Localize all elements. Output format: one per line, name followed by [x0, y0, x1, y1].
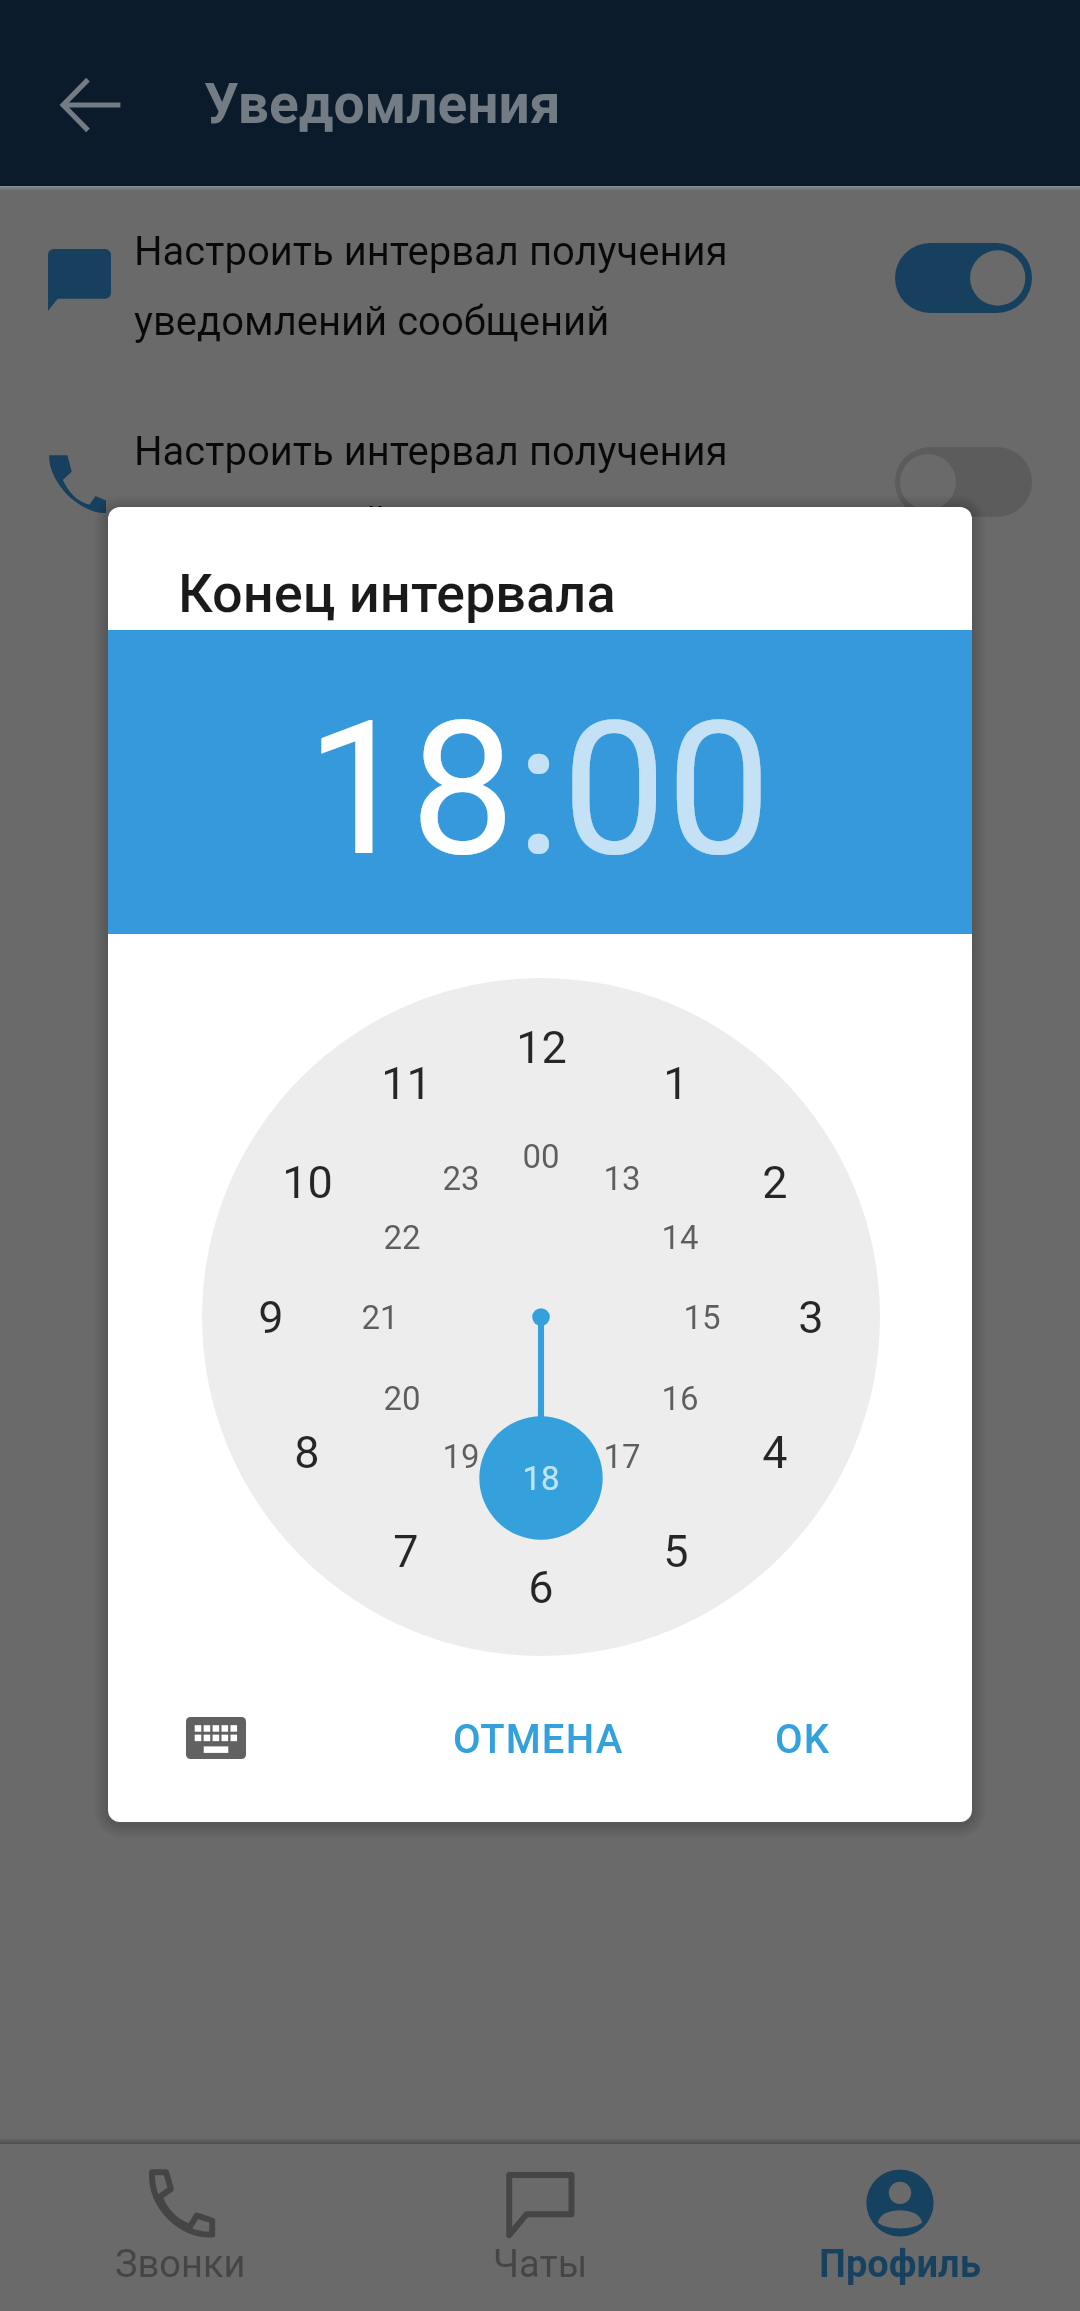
button[interactable]: OK [755, 1702, 851, 1777]
staticText: 6 [528, 1561, 554, 1614]
staticText: 4 [762, 1426, 788, 1479]
staticText: ОТМЕНА [453, 1716, 624, 1763]
staticText: 18 [522, 1459, 560, 1498]
staticText: Звонки [115, 2242, 246, 2287]
staticText: Конец интервала [178, 562, 616, 625]
staticText: 7 [393, 1525, 419, 1578]
staticText: 1 [663, 1057, 689, 1110]
staticText: Профиль [819, 2242, 981, 2287]
staticText: 12 [516, 1021, 567, 1074]
staticText: 23 [442, 1159, 480, 1198]
staticText: 14 [661, 1218, 699, 1257]
staticText: 19 [442, 1437, 480, 1476]
staticText: 00 [522, 1137, 560, 1176]
button[interactable]: Настроить интервал получения уведомлений… [0, 191, 1080, 391]
staticText: 10 [282, 1156, 333, 1209]
button[interactable]: Переключатель выключен [895, 447, 1032, 517]
button[interactable]: Звонки [0, 2144, 360, 2311]
button[interactable]: Переключатель включён [895, 243, 1032, 313]
button[interactable]: Чаты [360, 2144, 720, 2311]
staticText: 16 [661, 1379, 699, 1418]
staticText: 21 [361, 1298, 399, 1337]
button[interactable]: Ввод с клавиатуры [186, 1717, 246, 1759]
staticText: 22 [383, 1218, 421, 1257]
staticText: 15 [683, 1298, 721, 1337]
staticText: 9 [258, 1291, 284, 1344]
button[interactable]: 00 [562, 680, 772, 898]
button[interactable]: Профиль [720, 2144, 1080, 2311]
staticText: 5 [663, 1525, 689, 1578]
button[interactable]: ОТМЕНА [433, 1702, 644, 1777]
staticText: OK [775, 1716, 831, 1763]
staticText: 20 [383, 1379, 421, 1418]
staticText: 2 [762, 1156, 788, 1209]
button[interactable]: Назад [36, 50, 146, 160]
staticText: 3 [798, 1291, 824, 1344]
button[interactable]: 18 [306, 680, 516, 898]
staticText: Настроить интервал получения уведомлений… [134, 428, 774, 545]
staticText: 13 [603, 1159, 641, 1198]
staticText: : [516, 680, 562, 898]
staticText: 11 [381, 1057, 432, 1110]
staticText: Уведомления [204, 72, 561, 136]
staticText: 8 [294, 1426, 320, 1479]
button[interactable]: Настроить интервал получения уведомлений… [0, 391, 1080, 591]
staticText: Чаты [493, 2242, 588, 2287]
staticText: Настроить интервал получения уведомлений… [134, 228, 774, 345]
staticText: 17 [603, 1437, 641, 1476]
